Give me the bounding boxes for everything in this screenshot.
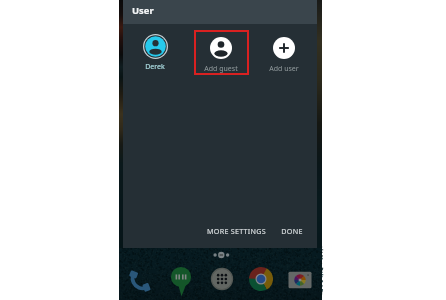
- staticText: Add guest: [204, 64, 238, 74]
- button[interactable]: Hangouts: [169, 267, 193, 291]
- staticText: Derek: [145, 62, 165, 72]
- staticText: User: [132, 4, 154, 17]
- button[interactable]: Chrome: [249, 267, 273, 291]
- button[interactable]: Phone: [130, 267, 154, 291]
- button[interactable]: MORE SETTINGS: [204, 222, 268, 240]
- button[interactable]: Derek: [127, 34, 183, 72]
- staticText: MORE SETTINGS: [207, 226, 266, 236]
- button[interactable]: Add guest: [193, 37, 249, 74]
- button[interactable]: Add user: [256, 37, 312, 74]
- staticText: Add user: [269, 64, 299, 74]
- button[interactable]: Apps: [210, 267, 234, 291]
- button[interactable]: DONE: [260, 222, 324, 240]
- staticText: DONE: [281, 226, 303, 236]
- button[interactable]: Camera: [288, 268, 312, 292]
